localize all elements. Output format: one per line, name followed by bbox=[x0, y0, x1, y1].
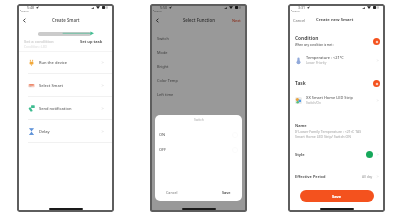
button[interactable]: Run the device bbox=[17, 51, 114, 73]
button[interactable]: Delay bbox=[17, 120, 114, 142]
button[interactable]: Add bbox=[373, 38, 380, 45]
staticText: Save bbox=[332, 194, 342, 199]
button[interactable]: Color Temp bbox=[150, 74, 247, 86]
staticText: Switch bbox=[157, 36, 169, 41]
staticText: Condition bbox=[295, 35, 319, 42]
staticText: All day bbox=[362, 174, 373, 178]
button[interactable]: Save bbox=[222, 190, 231, 195]
button[interactable]: Cancel bbox=[166, 190, 178, 195]
button[interactable]: OFF bbox=[155, 142, 242, 157]
staticText: Set a condition bbox=[24, 39, 54, 44]
button[interactable]: Next bbox=[232, 18, 247, 23]
staticText: Set up task bbox=[80, 39, 103, 44]
staticText: Create Smart bbox=[52, 17, 80, 23]
staticText: Save bbox=[222, 190, 231, 195]
button[interactable]: Cancel bbox=[293, 18, 306, 23]
button[interactable]: Select Smart bbox=[17, 74, 114, 96]
button[interactable]: Switch bbox=[150, 32, 247, 44]
button[interactable]: Save bbox=[300, 190, 374, 202]
staticText: 3:31 bbox=[298, 5, 306, 10]
staticText: Style bbox=[295, 152, 305, 157]
staticText: Switch bbox=[194, 118, 204, 122]
button[interactable]: Effective Period bbox=[288, 170, 385, 182]
staticText: Name bbox=[295, 123, 307, 128]
staticText: Delay bbox=[39, 129, 50, 134]
staticText: Send notification bbox=[39, 106, 72, 111]
staticText: XX Smart Home LED Strip bbox=[306, 95, 354, 100]
staticText: Select Function bbox=[183, 17, 215, 23]
staticText: Switch/On bbox=[306, 101, 321, 105]
staticText: Effective Period bbox=[295, 174, 326, 179]
staticText: Search bbox=[154, 9, 162, 12]
staticText: Search bbox=[21, 9, 29, 12]
staticText: Select Smart bbox=[39, 83, 63, 88]
staticText: Temperature : <21ºC bbox=[306, 55, 344, 60]
button[interactable]: Mode bbox=[150, 46, 247, 58]
staticText: Color Temp bbox=[157, 78, 178, 83]
staticText: If Lower Family Temperature : <21ºC TAS … bbox=[295, 129, 362, 139]
button[interactable]: Left time bbox=[150, 88, 247, 100]
button[interactable]: Bright bbox=[150, 60, 247, 72]
staticText: OFF bbox=[159, 147, 167, 152]
button[interactable]: Back bbox=[153, 16, 162, 25]
staticText: Condition : LED bbox=[24, 45, 47, 49]
staticText: Task bbox=[295, 80, 306, 87]
staticText: Cancel bbox=[166, 190, 178, 195]
button[interactable]: Style bbox=[288, 148, 385, 160]
button[interactable]: Send notification bbox=[17, 97, 114, 119]
button[interactable]: XX Smart Home LED Strip bbox=[288, 92, 385, 108]
staticText: Create new Smart bbox=[316, 17, 354, 23]
staticText: Mode bbox=[157, 50, 168, 55]
staticText: Cancel bbox=[293, 18, 306, 23]
button[interactable]: Back bbox=[20, 16, 29, 25]
staticText: 5:50 bbox=[160, 5, 168, 10]
button[interactable]: Temperature : <21ºC bbox=[288, 52, 385, 68]
staticText: When any condition is met : bbox=[295, 43, 335, 47]
button[interactable]: ON bbox=[155, 127, 242, 142]
staticText: Search bbox=[292, 9, 300, 12]
staticText: Run the device bbox=[39, 60, 68, 65]
staticText: Lower Priority bbox=[306, 61, 327, 65]
staticText: 5:48 bbox=[27, 5, 35, 10]
staticText: ON bbox=[159, 132, 166, 137]
staticText: Left time bbox=[157, 92, 174, 97]
button[interactable]: Add bbox=[373, 80, 380, 87]
staticText: Next bbox=[232, 18, 241, 23]
staticText: Bright bbox=[157, 64, 169, 69]
